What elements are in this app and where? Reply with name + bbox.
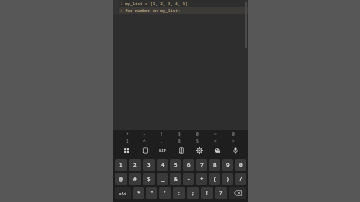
button[interactable]: "	[146, 187, 157, 199]
button[interactable]: ^	[136, 137, 153, 144]
staticText: .	[160, 138, 163, 144]
staticText: 8	[178, 138, 181, 144]
button[interactable]: &	[170, 173, 181, 185]
staticText: 9	[226, 161, 230, 169]
button[interactable]: 6	[183, 159, 194, 171]
button[interactable]: ~	[206, 130, 224, 137]
button[interactable]: 0	[235, 159, 246, 171]
staticText: 7	[200, 161, 204, 169]
button[interactable]: 5	[170, 159, 181, 171]
button[interactable]: Voice input	[226, 144, 244, 157]
staticText: ?	[219, 189, 223, 197]
staticText: 0	[232, 131, 235, 137]
staticText: /	[239, 175, 243, 183]
staticText: &	[174, 175, 178, 183]
staticText: -	[187, 175, 191, 183]
staticText: 1	[126, 138, 129, 144]
button[interactable]: Settings	[190, 144, 208, 157]
button[interactable]: 9	[222, 159, 233, 171]
button[interactable]: !	[201, 187, 213, 199]
button[interactable]: (	[209, 173, 220, 185]
staticText: 0	[239, 161, 243, 169]
staticText: )	[226, 175, 230, 183]
button[interactable]: 3	[143, 159, 155, 171]
button[interactable]: !	[153, 130, 170, 137]
button[interactable]: 0	[224, 130, 242, 137]
button[interactable]: ;	[187, 187, 199, 199]
button[interactable]: .	[153, 137, 170, 144]
staticText: 2	[133, 161, 137, 169]
staticText: $	[147, 175, 151, 183]
button[interactable]: Stickers	[208, 144, 226, 157]
button[interactable]: 1	[119, 137, 136, 144]
button[interactable]: #	[129, 173, 141, 185]
button[interactable]: 2	[129, 159, 141, 171]
button[interactable]: +	[196, 173, 207, 185]
staticText: <	[214, 138, 217, 144]
button[interactable]: 7	[196, 159, 207, 171]
button[interactable]: _	[157, 173, 168, 185]
staticText: 2	[120, 8, 123, 14]
staticText: 4	[161, 161, 165, 169]
staticText: :	[177, 189, 181, 197]
staticText: my_list = [1, 2, 3, 4, 5]	[125, 1, 188, 7]
staticText: -	[143, 131, 146, 137]
button[interactable]: %	[188, 137, 206, 144]
staticText: 1	[120, 1, 123, 7]
staticText: 1	[119, 161, 123, 169]
staticText: ;	[191, 189, 195, 197]
staticText: +	[200, 175, 204, 183]
staticText: #	[133, 175, 137, 183]
staticText: (	[213, 175, 217, 183]
button[interactable]: :	[173, 187, 185, 199]
button[interactable]: Emoji	[117, 144, 136, 157]
staticText: ~	[214, 131, 217, 137]
staticText: "	[150, 189, 154, 197]
staticText: 5	[174, 161, 178, 169]
staticText: ^	[143, 138, 146, 144]
staticText: @	[119, 175, 123, 183]
staticText: 8	[213, 161, 217, 169]
button[interactable]: /	[235, 173, 246, 185]
button[interactable]: $	[170, 130, 188, 137]
button[interactable]: -	[136, 130, 153, 137]
button[interactable]: $	[143, 173, 155, 185]
button[interactable]: 8	[170, 137, 188, 144]
staticText: !	[160, 131, 163, 137]
staticText: *	[137, 189, 141, 197]
staticText: =\<	[119, 191, 127, 196]
button[interactable]: Backspace	[229, 187, 246, 199]
staticText: 6	[187, 161, 191, 169]
button[interactable]: Translate	[172, 144, 190, 157]
button[interactable]: @	[115, 173, 127, 185]
button[interactable]: 0	[188, 130, 206, 137]
staticText: 3	[147, 161, 151, 169]
staticText: for number in my_list:	[125, 8, 181, 14]
button[interactable]: >	[224, 137, 242, 144]
button[interactable]: *	[133, 187, 144, 199]
staticText: %	[196, 138, 199, 144]
staticText: !	[205, 189, 209, 197]
staticText: '	[163, 189, 167, 197]
button[interactable]: +	[119, 130, 136, 137]
button[interactable]: )	[222, 173, 233, 185]
button[interactable]: -	[183, 173, 194, 185]
button[interactable]: <	[206, 137, 224, 144]
button[interactable]: 4	[157, 159, 168, 171]
staticText: +	[126, 131, 129, 137]
button[interactable]: 8	[209, 159, 220, 171]
button[interactable]: =\<	[115, 187, 131, 199]
staticText: 0	[196, 131, 199, 137]
button[interactable]: Clipboard	[136, 144, 154, 157]
button[interactable]: GIF	[154, 144, 172, 157]
staticText: GIF	[159, 148, 167, 153]
staticText: _	[161, 175, 165, 183]
button[interactable]: ?	[215, 187, 227, 199]
staticText: >	[232, 138, 235, 144]
button[interactable]: 1	[115, 159, 127, 171]
staticText: $	[178, 131, 181, 137]
button[interactable]: '	[159, 187, 171, 199]
